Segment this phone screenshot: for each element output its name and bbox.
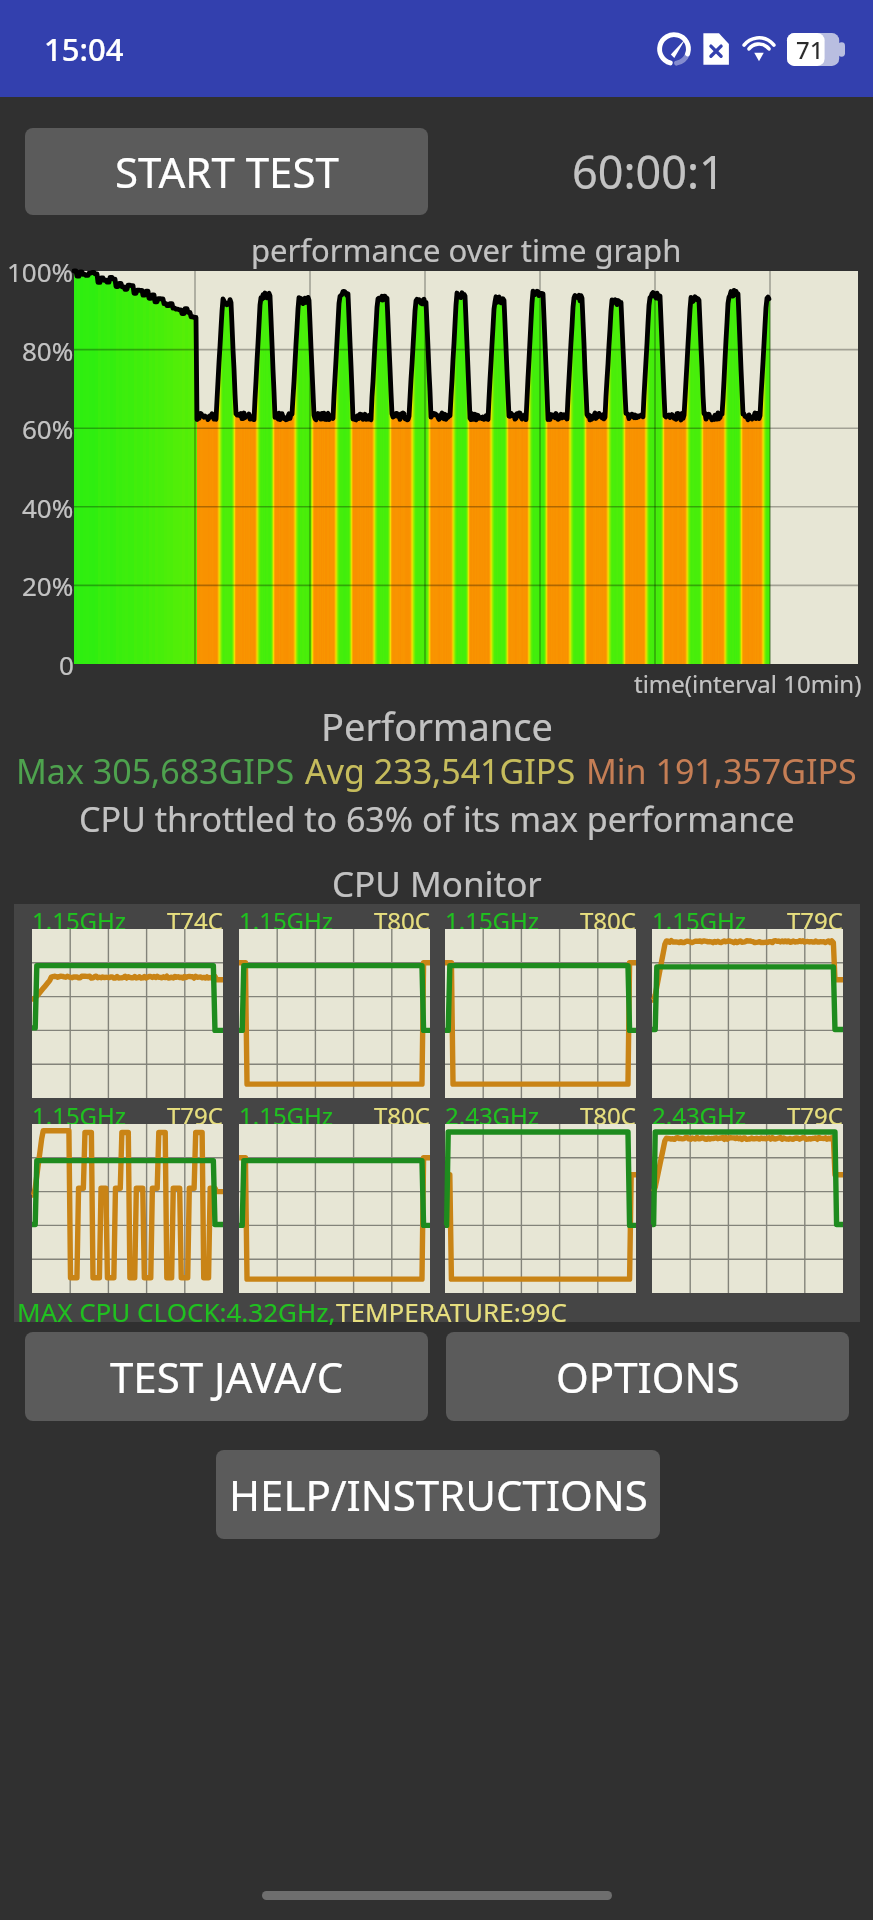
staticText: performance over time graph [251,229,682,271]
button[interactable]: TEST JAVA/C [25,1332,428,1421]
staticText: HELP/INSTRUCTIONS [229,1466,648,1523]
staticText: MAX CPU CLOCK:4.32GHz, [17,1294,336,1329]
staticText: 2.43GHz [652,1099,747,1124]
staticText: 1.15GHz [32,1099,127,1124]
staticText: TEST JAVA/C [110,1348,344,1405]
button[interactable]: OPTIONS [446,1332,849,1421]
staticText: Avg 233,541GIPS [305,748,576,794]
staticText: 1.15GHz [239,1099,334,1124]
staticText: 1.15GHz [32,904,127,929]
staticText: time(interval 10min) [634,667,862,700]
staticText: CPU throttled to 63% of its max performa… [79,796,795,842]
staticText: T80C [374,1099,430,1124]
button[interactable]: START TEST [25,128,428,215]
staticText: 71 [796,33,824,66]
staticText: T74C [167,904,223,929]
staticText: 0 [59,647,74,682]
staticText: 1.15GHz [445,904,540,929]
staticText: 100% [7,254,74,289]
button[interactable]: HELP/INSTRUCTIONS [216,1450,660,1539]
staticText: OPTIONS [556,1348,740,1405]
staticText: 20% [22,568,74,603]
staticText: T79C [167,1099,223,1124]
staticText: T80C [374,904,430,929]
other: Data saver [656,31,692,67]
staticText: Performance [321,700,553,750]
staticText: T79C [787,1099,843,1124]
staticText: T80C [580,1099,636,1124]
staticText: 60:00:1 [572,141,725,202]
staticText: START TEST [115,143,339,200]
staticText: 40% [22,490,74,525]
staticText: 80% [22,333,74,368]
staticText: CPU Monitor [332,860,542,904]
staticText: 1.15GHz [652,904,747,929]
staticText: Min 191,357GIPS [586,748,857,794]
other: No SIM card [701,31,731,67]
staticText: 60% [22,411,74,446]
staticText: Max 305,683GIPS [16,748,295,794]
other: Battery 71 percent [787,33,845,66]
staticText: T80C [580,904,636,929]
staticText: 1.15GHz [239,904,334,929]
staticText: T79C [787,904,843,929]
staticText: 2.43GHz [445,1099,540,1124]
staticText: 15:04 [44,28,124,70]
other: Wi-Fi [740,34,778,64]
staticText: TEMPERATURE:99C [336,1294,567,1329]
